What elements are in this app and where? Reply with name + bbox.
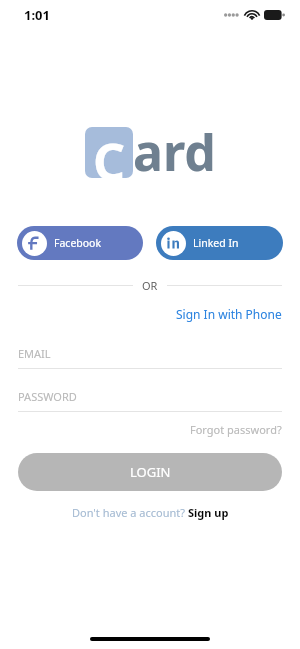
staticText: ard — [133, 118, 216, 186]
staticText: C — [93, 127, 126, 178]
staticText: EMAIL — [18, 346, 51, 361]
staticText: Sign In with Phone — [176, 306, 282, 322]
button[interactable]: Forgot password? — [190, 420, 282, 439]
button[interactable]: Linked In — [156, 226, 283, 260]
staticText: Don't have a account? Sign up — [72, 505, 229, 520]
staticText: Facebook — [54, 236, 102, 250]
button[interactable]: PASSWORD — [18, 385, 282, 407]
staticText: Forgot password? — [190, 422, 282, 437]
staticText: 1:01 — [24, 6, 50, 24]
button[interactable]: LOGIN — [18, 453, 282, 491]
button[interactable]: EMAIL — [18, 342, 282, 364]
staticText: OR — [142, 278, 158, 293]
button[interactable]: Don't have a account? Sign up — [70, 503, 231, 522]
staticText: Linked In — [193, 236, 239, 250]
button[interactable]: Sign In with Phone — [176, 304, 282, 324]
staticText: PASSWORD — [18, 389, 77, 404]
staticText: LOGIN — [130, 463, 171, 481]
button[interactable]: Facebook — [17, 226, 143, 260]
